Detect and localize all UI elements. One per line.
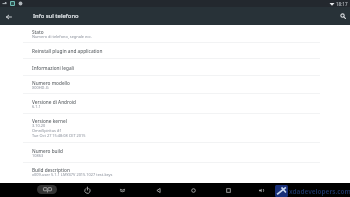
- button[interactable]: Back: [2, 10, 15, 23]
- button[interactable]: Back: [152, 183, 164, 197]
- staticText: Numero di telefono, segnale ecc.: [32, 34, 93, 39]
- button[interactable]: Stato: [0, 26, 350, 43]
- button[interactable]: Versione di Android: [0, 94, 350, 114]
- staticText: Numero build: [32, 148, 63, 154]
- button[interactable]: Home: [187, 183, 199, 197]
- button[interactable]: Versione kernel: [0, 114, 350, 143]
- button[interactable]: Sound: [255, 183, 267, 197]
- staticText: Info sul telefono: [33, 12, 79, 20]
- button[interactable]: Volume: [116, 183, 128, 197]
- staticText: 10863: [32, 153, 44, 158]
- staticText: 6.1.1: [32, 104, 41, 109]
- staticText: x009-user 5.1.1 LMY47V 2015.1027 test-ke…: [32, 172, 113, 177]
- staticText: Build description: [32, 167, 70, 173]
- staticText: Versione kernel: [32, 118, 67, 124]
- staticText: Reinstall plugin and application: [32, 48, 103, 54]
- staticText: 3.10.20 OmniSpiritus #1 Tue Oct 27 15:48…: [32, 123, 86, 138]
- staticText: Versione di Android: [32, 99, 76, 105]
- button[interactable]: Recents: [222, 183, 234, 197]
- staticText: Informazioni legali: [32, 65, 75, 71]
- button[interactable]: Change keyboard: [37, 185, 57, 194]
- staticText: Numero modello: [32, 80, 70, 86]
- staticText: Stato: [32, 29, 44, 35]
- button[interactable]: Build description: [0, 163, 350, 182]
- staticText: 18:17: [336, 1, 348, 7]
- button[interactable]: Numero modello: [0, 76, 350, 94]
- button[interactable]: Power: [81, 183, 93, 197]
- staticText: xdadevelopers.com: [289, 187, 350, 196]
- button[interactable]: Numero build: [0, 143, 350, 163]
- staticText: X00HD-G: [32, 85, 49, 90]
- button[interactable]: Search: [336, 9, 349, 22]
- button[interactable]: Informazioni legali: [0, 59, 350, 76]
- button[interactable]: Reinstall plugin and application: [0, 43, 350, 59]
